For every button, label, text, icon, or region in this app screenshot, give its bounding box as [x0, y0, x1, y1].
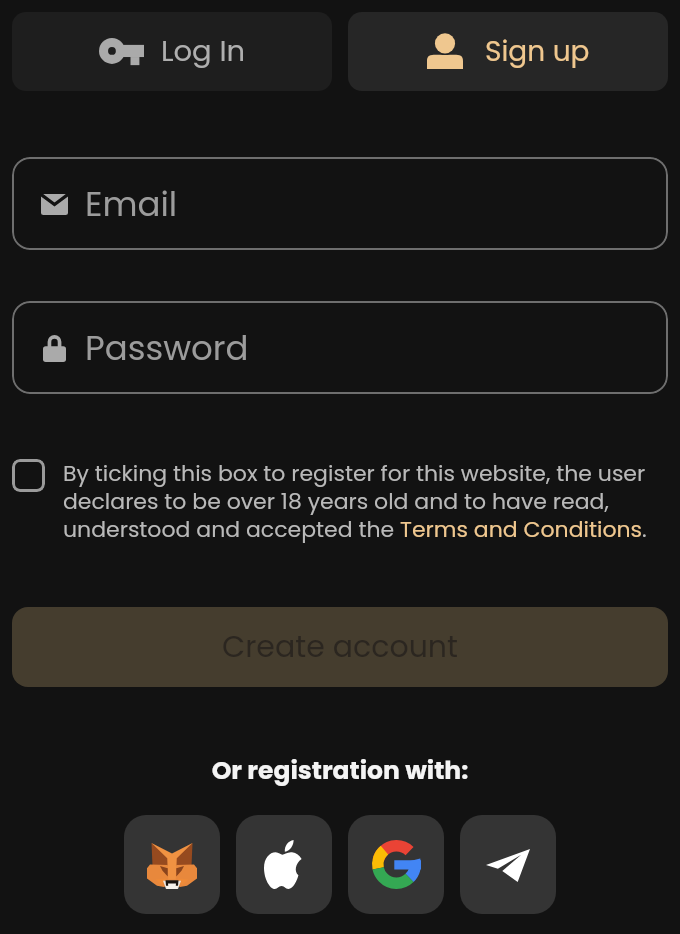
staticText: By ticking this box to register for this…	[63, 458, 668, 545]
staticText: Password	[85, 324, 249, 372]
staticText: Sign up	[485, 32, 590, 71]
staticText: Log In	[161, 31, 246, 72]
staticText: Or registration with:	[0, 753, 680, 788]
button[interactable]: Sign up	[348, 12, 668, 91]
button[interactable]: Sign up with Apple	[236, 815, 332, 914]
button[interactable]: Create account	[12, 607, 668, 687]
button[interactable]: Password	[12, 301, 668, 394]
button[interactable]: Sign up with Telegram	[460, 815, 556, 914]
button[interactable]: Sign up with Google	[348, 815, 444, 914]
button[interactable]: Email	[12, 157, 668, 250]
staticText: Email	[85, 180, 178, 228]
button[interactable]: Log In	[12, 12, 332, 91]
staticText: Create account	[222, 626, 458, 668]
button[interactable]: Sign up with MetaMask	[124, 815, 220, 914]
button[interactable]: Accept terms and conditions	[12, 459, 45, 492]
